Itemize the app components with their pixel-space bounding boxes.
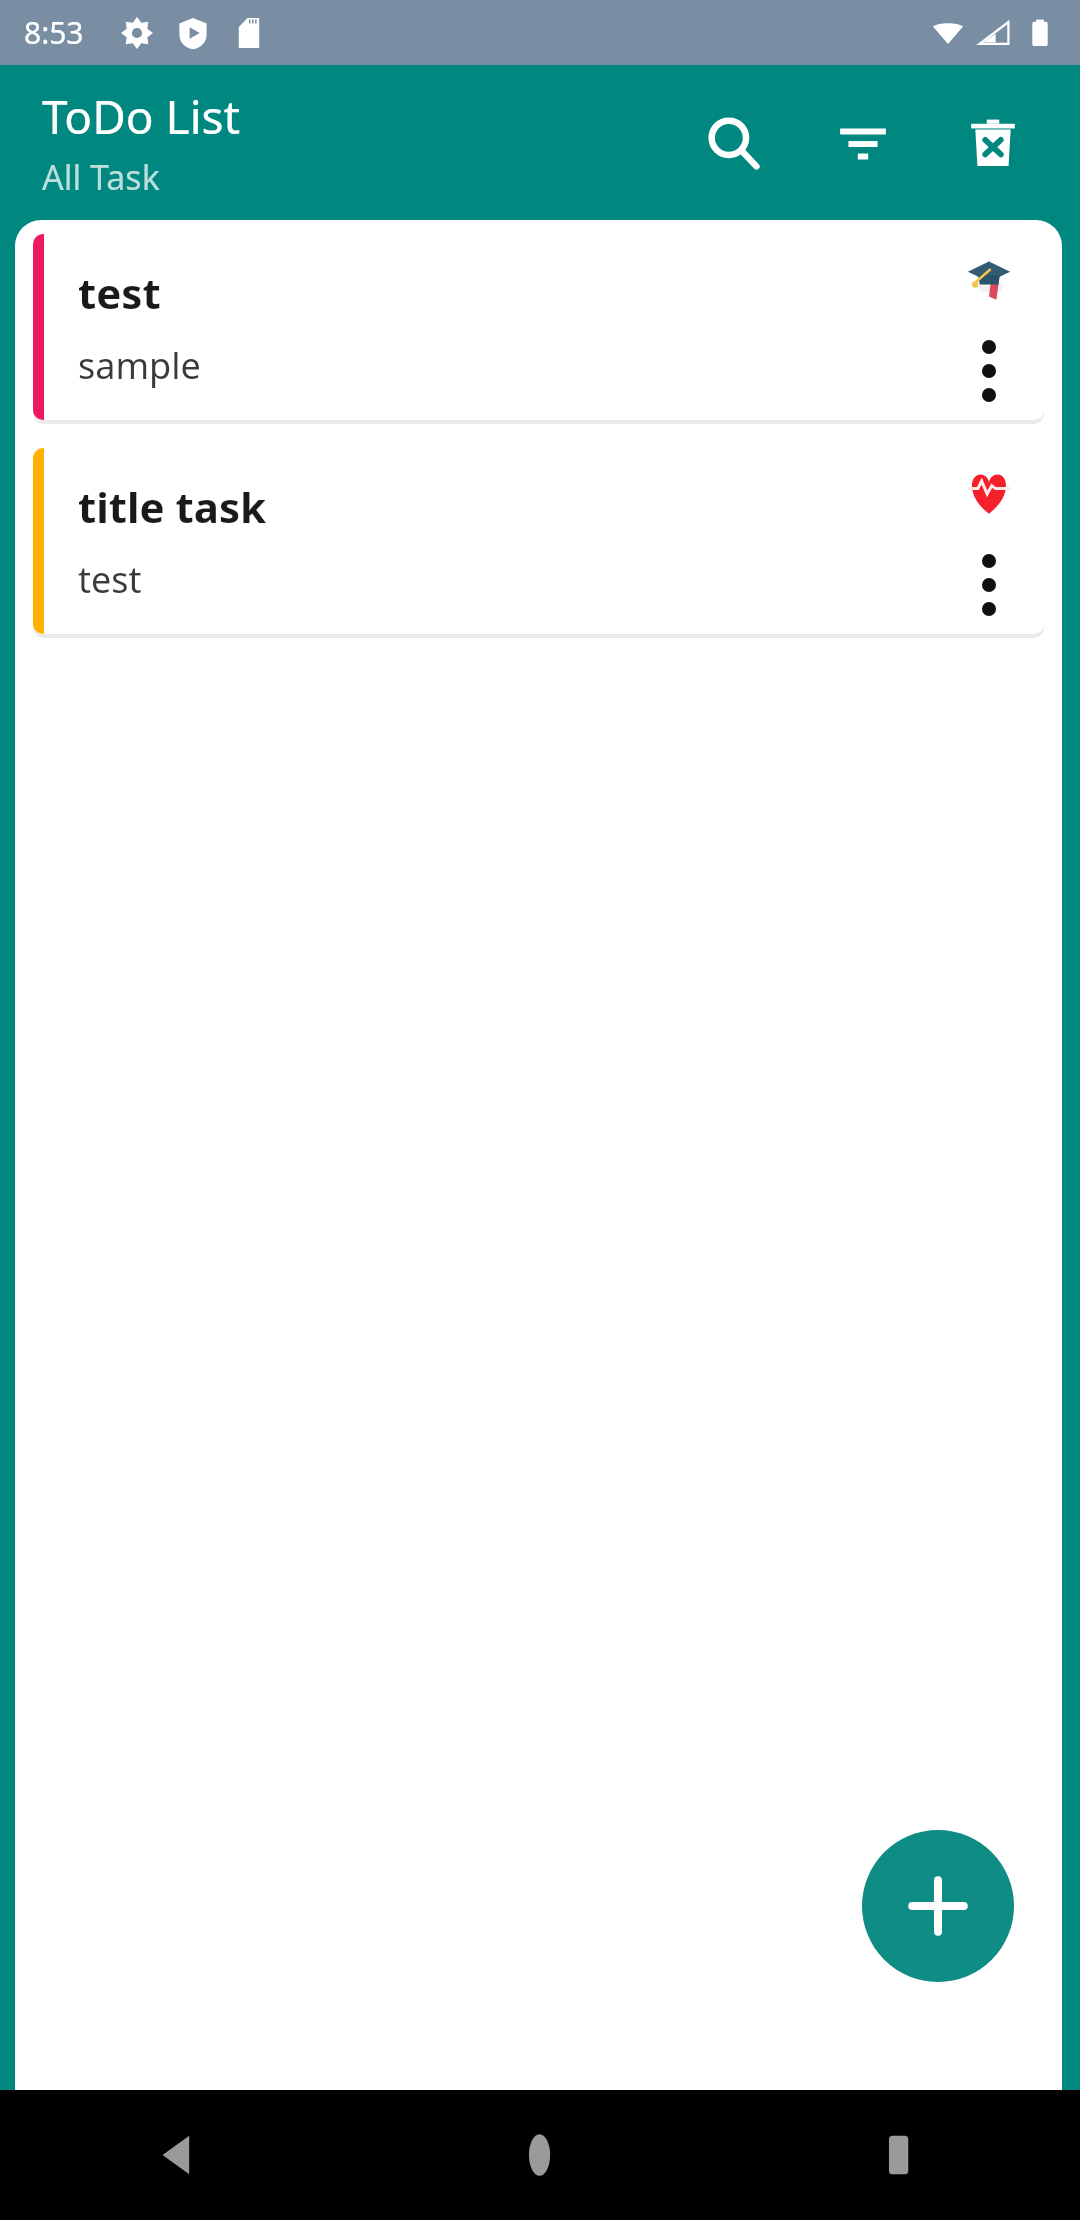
staticText: ToDo List — [42, 85, 241, 148]
button[interactable]: title task — [33, 448, 1044, 634]
button[interactable]: test — [33, 234, 1044, 420]
staticText: sample — [78, 341, 201, 390]
staticText: test — [78, 264, 161, 321]
button[interactable]: Home — [360, 2090, 720, 2220]
staticText: test — [78, 555, 142, 604]
staticText: 8:53 — [24, 12, 84, 53]
button[interactable]: Recent apps — [720, 2090, 1080, 2220]
button[interactable]: Back — [0, 2090, 360, 2220]
button[interactable]: Search — [668, 78, 798, 208]
button[interactable]: Add task — [862, 1830, 1014, 1982]
button[interactable]: Filter — [798, 78, 928, 208]
button[interactable]: More options — [954, 546, 1024, 624]
staticText: All Task — [42, 154, 160, 200]
button[interactable]: Delete all — [928, 78, 1058, 208]
staticText: title task — [78, 478, 267, 535]
button[interactable]: More options — [954, 332, 1024, 410]
